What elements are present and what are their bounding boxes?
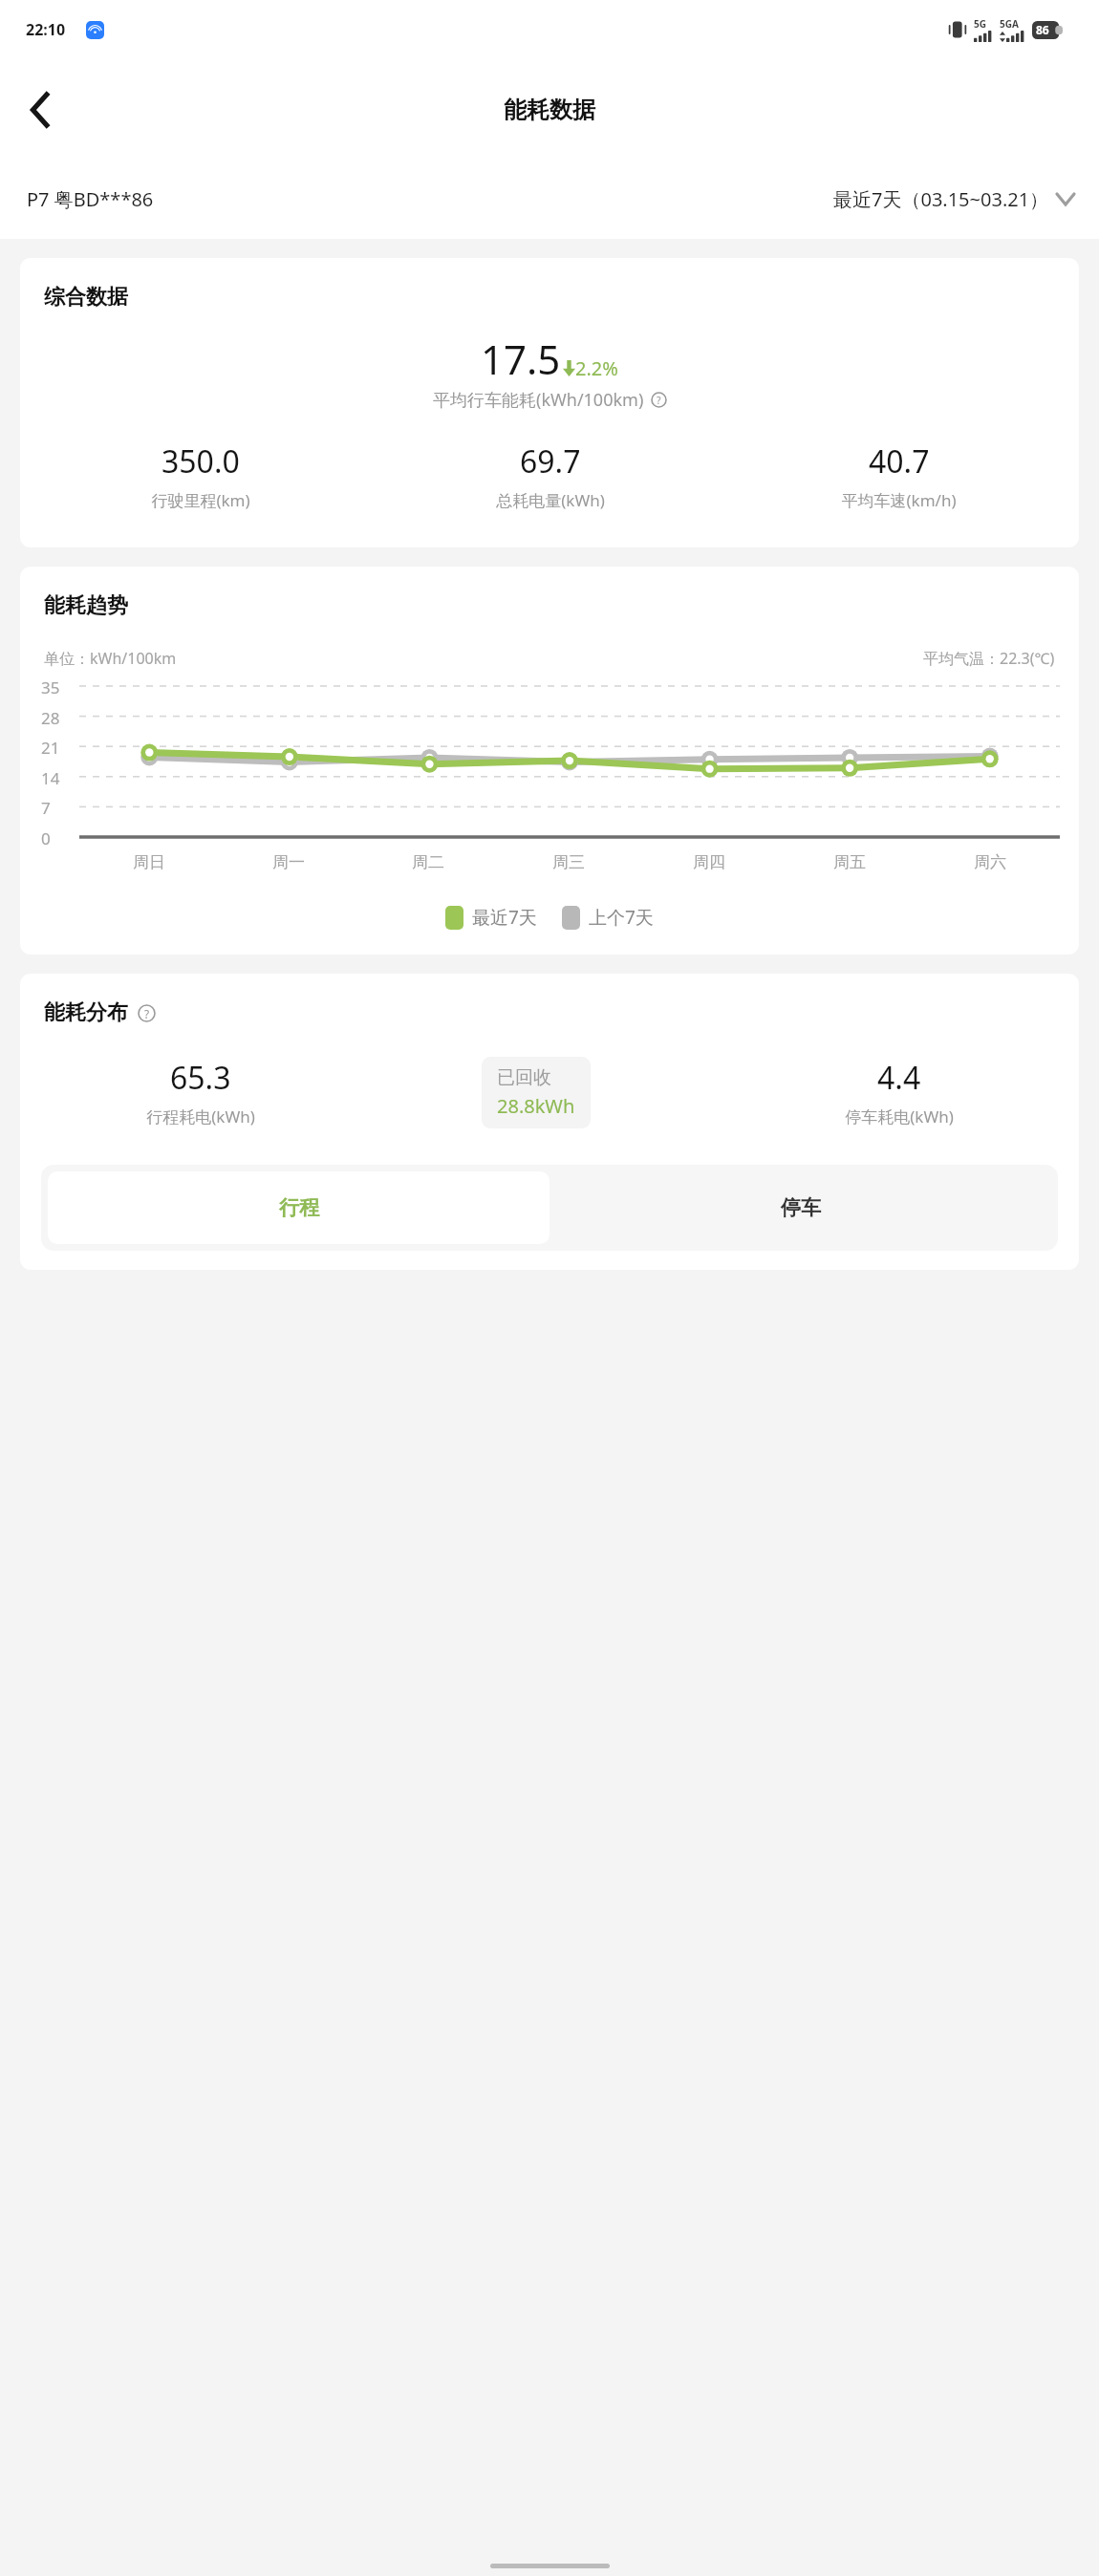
staticText: 周四 [693, 852, 725, 872]
staticText: 综合数据 [44, 284, 128, 311]
staticText: 86 [1036, 22, 1049, 37]
staticText: 停车耗电(kWh) [845, 1106, 954, 1127]
staticText: 上个7天 [589, 905, 654, 930]
staticText: 停车 [781, 1195, 821, 1220]
staticText: 最近7天（03.15~03.21） [833, 186, 1049, 212]
staticText: 总耗电量(kWh) [496, 489, 605, 511]
staticText: 69.7 [520, 440, 581, 483]
button[interactable]: 停车 [549, 1171, 1051, 1244]
staticText: 平均行车能耗(kWh/100km) [433, 388, 644, 412]
staticText: 单位：kWh/100km [44, 648, 177, 669]
staticText: 周五 [833, 852, 866, 872]
staticText: 0 [41, 827, 51, 847]
staticText: 28.8kWh [497, 1093, 575, 1119]
staticText: 5G [974, 17, 986, 31]
staticText: 平均气温：22.3(℃) [923, 648, 1055, 669]
staticText: 65.3 [170, 1057, 231, 1099]
staticText: 4.4 [877, 1057, 921, 1099]
staticText: 周三 [552, 852, 585, 872]
staticText: 周日 [133, 852, 165, 872]
staticText: 周一 [272, 852, 305, 872]
staticText: 最近7天 [472, 905, 537, 930]
staticText: 能耗数据 [504, 96, 595, 124]
staticText: 行驶里程(km) [151, 489, 250, 511]
button[interactable]: Back [13, 83, 67, 137]
staticText: 2.2% [575, 355, 618, 381]
staticText: 28 [41, 707, 60, 726]
staticText: 周六 [974, 852, 1006, 872]
staticText: 14 [41, 767, 60, 786]
button[interactable]: 行程 [48, 1171, 549, 1244]
staticText: 已回收 [497, 1066, 551, 1089]
staticText: 5GA [1000, 17, 1019, 31]
button[interactable]: P7 粤BD***86 [27, 186, 154, 212]
staticText: 行程耗电(kWh) [146, 1106, 255, 1127]
staticText: 行程 [279, 1195, 319, 1220]
staticText: 7 [41, 797, 51, 816]
staticText: 能耗趋势 [44, 592, 128, 619]
staticText: 能耗分布 [44, 999, 128, 1026]
staticText: ? [144, 1006, 150, 1021]
staticText: 22:10 [26, 19, 66, 40]
staticText: 17.5 [481, 332, 561, 386]
staticText: 35 [41, 676, 60, 696]
button[interactable]: 最近7天（03.15~03.21） [833, 186, 1074, 212]
staticText: 21 [41, 737, 60, 756]
staticText: 350.0 [162, 440, 240, 483]
staticText: ? [657, 394, 661, 407]
staticText: 平均车速(km/h) [841, 489, 957, 511]
staticText: 周二 [412, 852, 444, 872]
staticText: 40.7 [869, 440, 930, 483]
